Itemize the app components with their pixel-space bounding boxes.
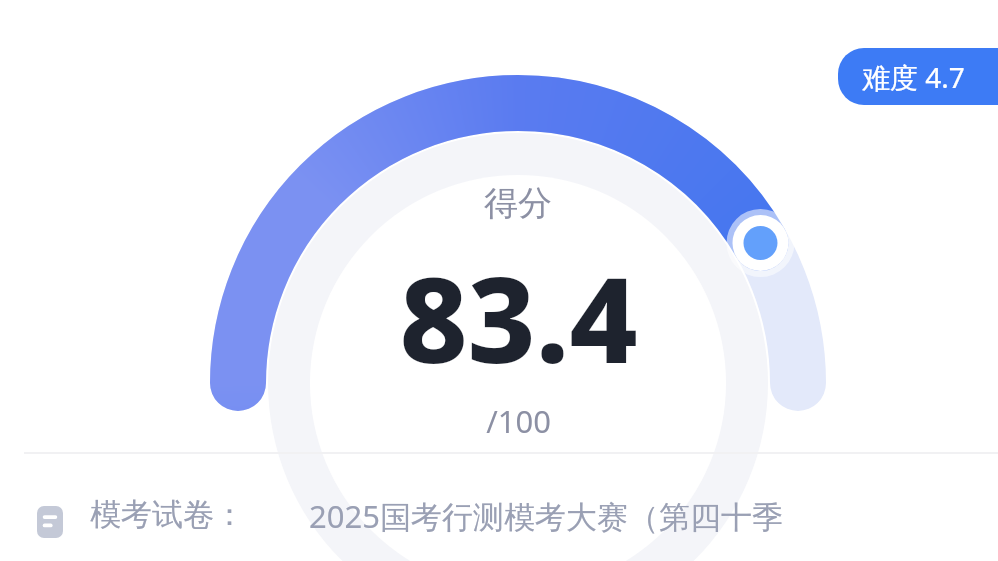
other: 试卷	[37, 506, 63, 538]
staticText: 2025国考行测模考大赛（第四十季	[309, 495, 783, 537]
button[interactable]: 难度 4.7	[838, 48, 998, 105]
staticText: 模考试卷：	[90, 495, 245, 534]
staticText: /100	[486, 400, 551, 442]
staticText: 得分	[484, 182, 552, 225]
staticText: 难度 4.7	[862, 58, 965, 96]
button[interactable]: 试卷	[0, 495, 998, 561]
staticText: 83.4	[399, 237, 638, 398]
